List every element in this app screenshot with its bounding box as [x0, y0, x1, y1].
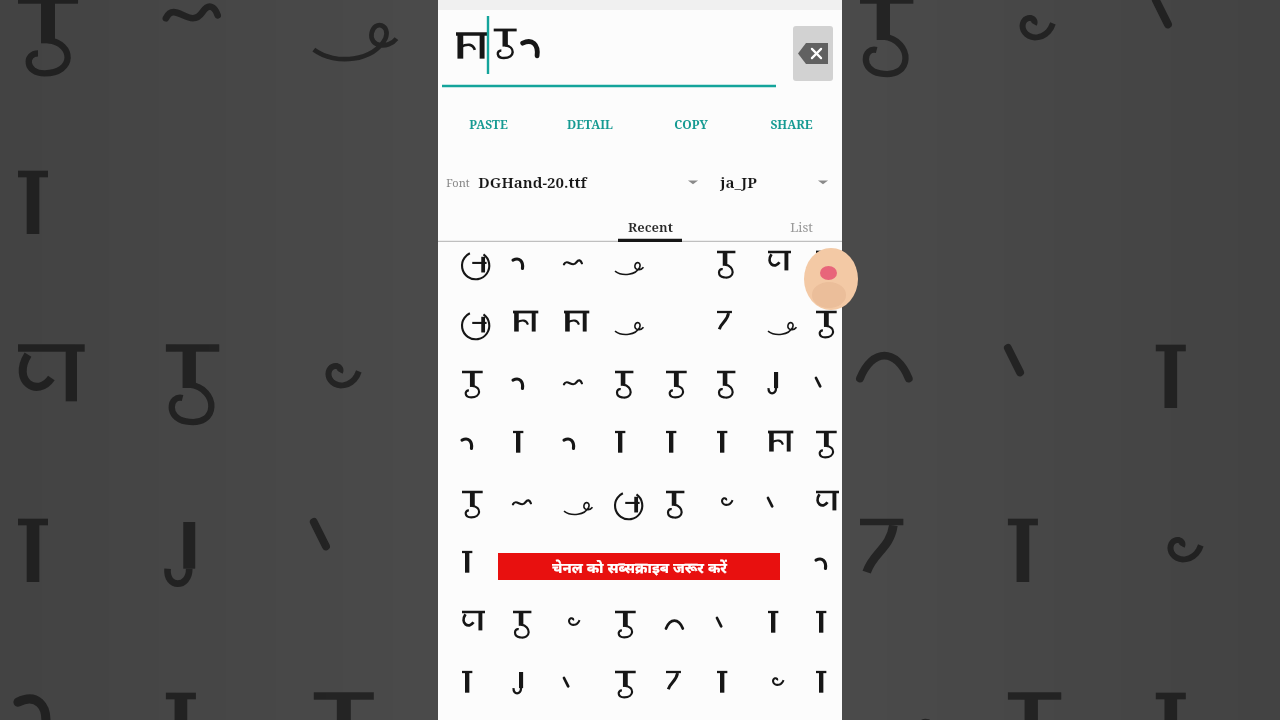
staticText: ja_JP	[720, 172, 757, 192]
staticText: Font	[446, 175, 470, 190]
staticText: DGHand-20.ttf	[478, 172, 587, 192]
staticText: चेनल को सब्सक्राइब जरूर करें	[552, 557, 727, 577]
button[interactable]: DETAIL	[539, 108, 640, 140]
button[interactable]: Backspace	[793, 26, 833, 81]
button[interactable]: SHARE	[741, 108, 842, 140]
button[interactable]: चेनल को सब्सक्राइब जरूर करें	[498, 553, 780, 580]
button[interactable]: Glyph grid	[438, 242, 842, 720]
button[interactable]: COPY	[640, 108, 741, 140]
staticText: Recent	[628, 218, 673, 236]
staticText: PASTE	[469, 116, 508, 132]
button[interactable]: List	[790, 212, 842, 242]
button[interactable]: ja_JP	[720, 162, 832, 202]
staticText: SHARE	[770, 116, 813, 132]
button[interactable]: PASTE	[438, 108, 539, 140]
staticText: DETAIL	[567, 116, 613, 132]
button[interactable]: Font	[446, 162, 702, 202]
button[interactable]: Text input	[442, 10, 776, 88]
button[interactable]: Recent	[610, 212, 690, 242]
staticText: COPY	[674, 116, 708, 132]
staticText: List	[790, 218, 813, 236]
